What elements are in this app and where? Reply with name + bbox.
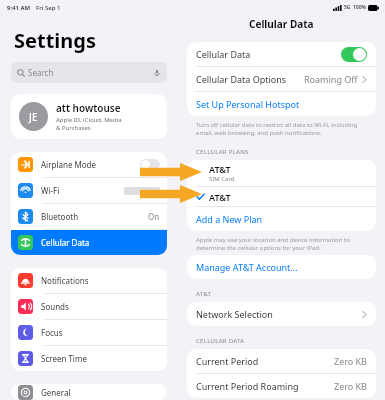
- staticText: General: [41, 387, 71, 398]
- button[interactable]: Focus: [11, 320, 167, 345]
- button[interactable]: Network Selection: [187, 302, 376, 326]
- button[interactable]: AT&T: [187, 187, 376, 206]
- staticText: Settings: [14, 27, 96, 54]
- button[interactable]: Set Up Personal Hotspot: [187, 92, 376, 116]
- staticText: 5G: [344, 4, 351, 11]
- staticText: Cellular Data: [249, 17, 314, 31]
- staticText: Roaming Off: [304, 73, 358, 85]
- staticText: Screen Time: [41, 353, 87, 364]
- button[interactable]: Airplane Mode: [11, 152, 167, 177]
- button[interactable]: Screen Time: [11, 346, 167, 371]
- staticText: CELLULAR PLANS: [196, 148, 249, 156]
- button[interactable]: Search: [11, 62, 167, 83]
- button[interactable]: Cellular Data Options: [187, 67, 376, 91]
- staticText: Airplane Mode: [41, 159, 97, 170]
- staticText: Network Selection: [196, 308, 273, 320]
- staticText: 100%: [353, 4, 366, 11]
- other: Voice search: [153, 69, 161, 77]
- staticText: & Purchases: [56, 124, 91, 132]
- button[interactable]: JE: [11, 94, 167, 139]
- staticText: Add a New Plan: [196, 213, 263, 225]
- staticText: Zero KB: [334, 355, 367, 367]
- staticText: Zero KB: [334, 380, 367, 392]
- staticText: Turn off cellular data to restrict all d…: [196, 121, 358, 137]
- staticText: AT&T: [196, 290, 212, 298]
- staticText: Wi-Fi: [41, 185, 60, 196]
- button[interactable]: General: [11, 384, 167, 400]
- button[interactable]: AT&T: [187, 160, 376, 186]
- staticText: Fri Sep 1: [36, 4, 61, 12]
- staticText: Bluetooth: [41, 211, 79, 222]
- staticText: Current Period: [196, 355, 259, 367]
- button[interactable]: Bluetooth: [11, 204, 167, 229]
- button[interactable]: Current Period Roaming: [187, 374, 376, 398]
- button[interactable]: Current Period: [187, 349, 376, 373]
- staticText: Cellular Data: [196, 48, 251, 60]
- button[interactable]: Cellular Data: [187, 42, 376, 66]
- button[interactable]: Cellular Data: [11, 230, 167, 255]
- staticText: Apple may use your location and device i…: [196, 236, 350, 252]
- button[interactable]: Add a New Plan: [187, 207, 376, 231]
- staticText: Apple ID, iCloud, Media: [56, 116, 122, 124]
- button[interactable]: Wi-Fi: [11, 178, 167, 203]
- staticText: Cellular Data: [41, 237, 90, 248]
- staticText: Sounds: [41, 301, 69, 312]
- button[interactable]: [341, 47, 367, 62]
- staticText: Notifications: [41, 275, 89, 286]
- staticText: Set Up Personal Hotspot: [196, 98, 300, 110]
- staticText: Current Period Roaming: [196, 380, 299, 392]
- staticText: AT&T: [209, 163, 231, 175]
- staticText: Focus: [41, 327, 63, 338]
- staticText: Cellular Data Options: [196, 73, 287, 85]
- staticText: AT&T: [209, 191, 231, 203]
- staticText: 9:41 AM: [7, 4, 31, 12]
- staticText: Manage AT&T Account...: [196, 261, 298, 273]
- staticText: CELLULAR DATA: [196, 337, 245, 345]
- staticText: Search: [28, 67, 54, 78]
- staticText: att howtouse: [56, 101, 121, 115]
- button[interactable]: Notifications: [11, 268, 167, 293]
- button[interactable]: Sounds: [11, 294, 167, 319]
- staticText: JE: [29, 110, 38, 124]
- staticText: SIM Card: [209, 175, 235, 183]
- button[interactable]: Manage AT&T Account...: [187, 255, 376, 279]
- staticText: On: [148, 211, 160, 222]
- button[interactable]: [140, 159, 160, 170]
